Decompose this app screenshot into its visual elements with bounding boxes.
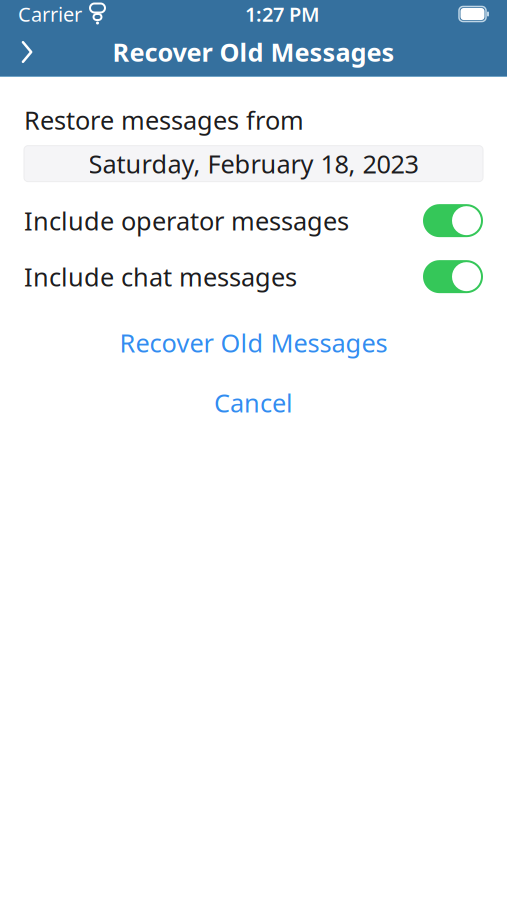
- button[interactable]: Include operator messages: [24, 204, 483, 238]
- staticText: Recover Old Messages: [119, 326, 387, 359]
- staticText: Include chat messages: [24, 260, 297, 293]
- button[interactable]: Include chat messages: [24, 260, 483, 294]
- staticText: Saturday, February 18, 2023: [88, 147, 418, 180]
- staticText: Recover Old Messages: [112, 35, 394, 69]
- staticText: Restore messages from: [24, 103, 304, 137]
- button[interactable]: Recover Old Messages: [24, 328, 483, 358]
- staticText: Include operator messages: [24, 204, 349, 237]
- staticText: 1:27 PM: [245, 1, 320, 27]
- button[interactable]: Back: [0, 28, 54, 76]
- staticText: Cancel: [214, 386, 293, 419]
- staticText: Carrier: [18, 1, 82, 27]
- button[interactable]: Saturday, February 18, 2023: [24, 146, 483, 182]
- button[interactable]: Cancel: [24, 388, 483, 418]
